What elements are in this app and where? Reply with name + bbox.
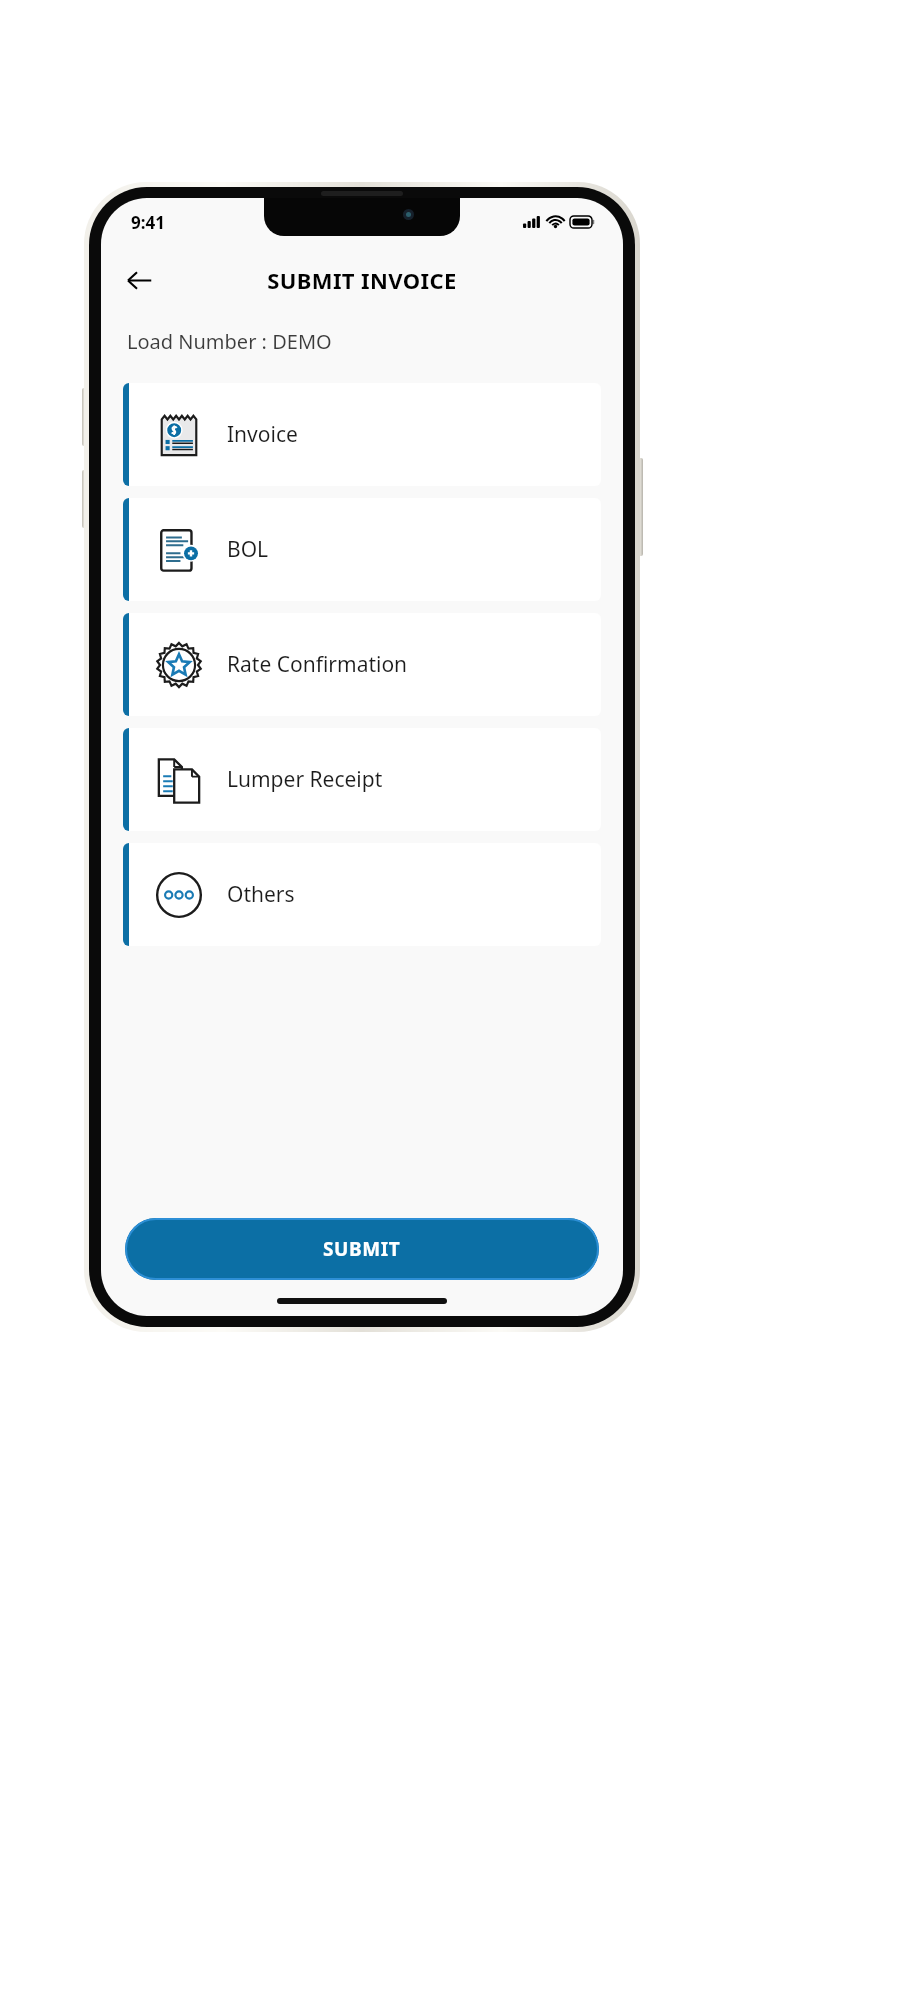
button[interactable]: Back: [117, 258, 161, 302]
staticText: Invoice: [227, 420, 298, 449]
staticText: 9:41: [131, 211, 165, 234]
staticText: SUBMIT INVOICE: [267, 265, 457, 295]
button[interactable]: SUBMIT: [125, 1218, 599, 1280]
button[interactable]: Lumper Receipt: [123, 728, 601, 831]
staticText: Lumper Receipt: [227, 765, 383, 794]
button[interactable]: BOL: [123, 498, 601, 601]
staticText: Rate Confirmation: [227, 650, 408, 679]
button[interactable]: Others: [123, 843, 601, 946]
staticText: SUBMIT: [323, 1236, 401, 1262]
staticText: Load Number : DEMO: [127, 328, 332, 355]
button[interactable]: Rate Confirmation: [123, 613, 601, 716]
staticText: BOL: [227, 535, 269, 564]
button[interactable]: Invoice: [123, 383, 601, 486]
staticText: Others: [227, 880, 295, 909]
